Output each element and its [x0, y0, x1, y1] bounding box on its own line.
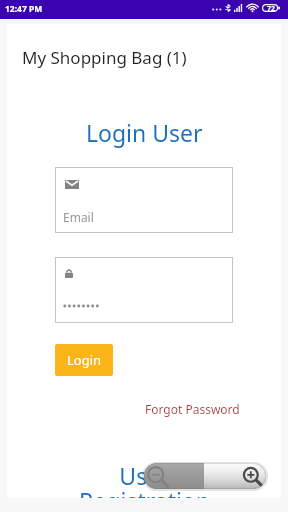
staticText: User Registration	[79, 460, 210, 498]
staticText: Forgot Password	[145, 401, 240, 417]
button[interactable]: Login	[55, 344, 113, 376]
button[interactable]: Zoom in	[204, 463, 266, 489]
staticText: Login	[67, 351, 102, 369]
button[interactable]	[55, 257, 233, 323]
button[interactable]: Forgot Password	[145, 401, 240, 417]
button[interactable]: Email	[55, 167, 233, 233]
staticText: Email	[63, 209, 94, 225]
button[interactable]: User Registration	[79, 460, 210, 498]
button[interactable]: Zoom out	[144, 463, 204, 489]
staticText: 12:47 PM	[5, 3, 43, 15]
staticText: My Shopping Bag (1)	[22, 46, 187, 69]
staticText: 72	[267, 4, 276, 12]
staticText: Login User	[86, 117, 203, 148]
